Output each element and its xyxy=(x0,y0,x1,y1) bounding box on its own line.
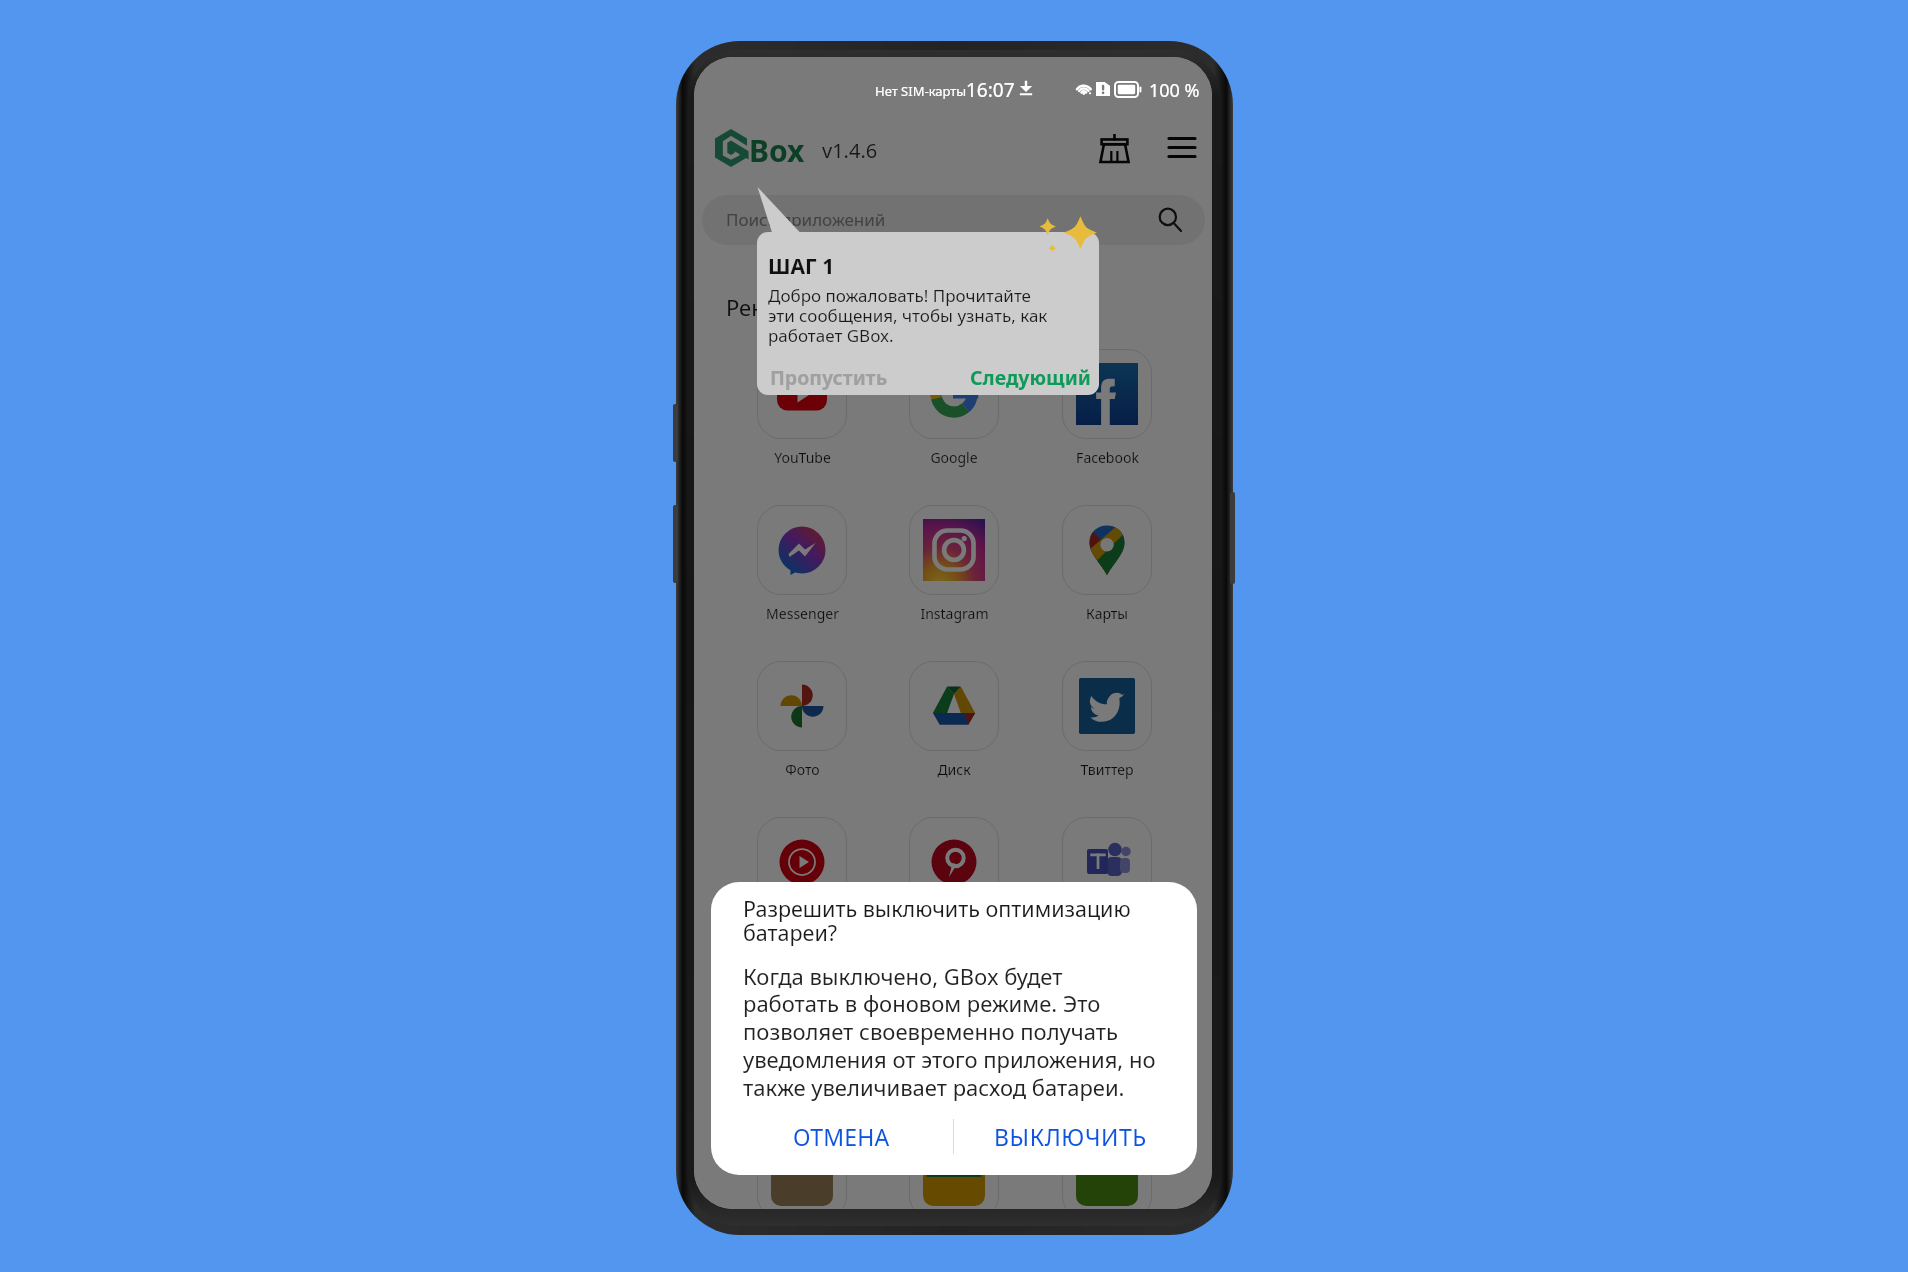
staticText: Добро пожаловать! Прочитайте эти сообщен… xyxy=(768,284,1048,347)
button[interactable]: YouTube xyxy=(745,349,859,479)
button[interactable]: ОТМЕНА xyxy=(777,1114,906,1159)
staticText: Рекомендуемые xyxy=(726,292,900,322)
staticText: Когда выключено, GBox будет работать в ф… xyxy=(743,961,1156,1102)
button[interactable]: Pinterest xyxy=(897,817,1011,947)
button[interactable]: Очистить xyxy=(1092,125,1137,170)
button[interactable]: Следующий xyxy=(959,360,1099,394)
staticText: Pinterest xyxy=(925,916,984,935)
button[interactable]: Твиттер xyxy=(1050,661,1164,791)
button[interactable]: Facebook xyxy=(1050,349,1164,479)
staticText: Google xyxy=(930,448,978,467)
button[interactable]: Банк xyxy=(745,1130,859,1209)
staticText: ВЫКЛЮЧИТЬ xyxy=(994,1121,1147,1152)
staticText: OK xyxy=(1097,1073,1117,1092)
staticText: 100 % xyxy=(1149,78,1200,103)
button[interactable]: Меню xyxy=(1159,125,1204,170)
staticText: Нет SIM-карты xyxy=(875,82,967,100)
button[interactable]: Диск xyxy=(897,661,1011,791)
button[interactable]: YT Music xyxy=(745,817,859,947)
staticText: v1.4.6 xyxy=(822,137,878,164)
staticText: Карты xyxy=(1086,604,1128,623)
staticText: YT Music xyxy=(773,916,831,935)
button[interactable]: Google xyxy=(897,349,1011,479)
staticText: VK xyxy=(945,1073,963,1092)
button[interactable]: Opera xyxy=(745,974,859,1104)
staticText: Фото xyxy=(785,760,820,779)
button[interactable]: Каспи xyxy=(1050,1130,1164,1209)
button[interactable]: Сбер xyxy=(897,1130,1011,1209)
staticText: ШАГ 1 xyxy=(768,252,835,281)
button[interactable]: Поиск приложений xyxy=(702,195,1205,245)
button[interactable]: VK xyxy=(897,974,1011,1104)
button[interactable]: Фото xyxy=(745,661,859,791)
staticText: ОТМЕНА xyxy=(793,1121,890,1152)
staticText: 16:07 xyxy=(966,77,1015,103)
button[interactable]: ВЫКЛЮЧИТЬ xyxy=(978,1114,1163,1159)
button[interactable]: Карты xyxy=(1050,505,1164,635)
staticText: Пропустить xyxy=(770,364,888,391)
staticText: Box xyxy=(749,130,805,171)
button[interactable]: Instagram xyxy=(897,505,1011,635)
button[interactable]: OK xyxy=(1050,974,1164,1104)
staticText: Opera xyxy=(782,1073,823,1092)
staticText: Поиск приложений xyxy=(726,208,886,231)
staticText: Teams xyxy=(1086,916,1129,935)
staticText: YouTube xyxy=(774,448,831,467)
staticText: Messenger xyxy=(766,604,839,623)
staticText: Диск xyxy=(937,760,971,779)
staticText: Твиттер xyxy=(1080,760,1134,779)
button[interactable]: Пропустить xyxy=(759,360,899,394)
button[interactable]: Teams xyxy=(1050,817,1164,947)
staticText: Следующий xyxy=(970,364,1091,391)
staticText: Разрешить выключить оптимизацию батареи? xyxy=(743,894,1131,948)
staticText: Instagram xyxy=(920,604,989,623)
staticText: Facebook xyxy=(1076,448,1139,467)
button[interactable]: Messenger xyxy=(745,505,859,635)
